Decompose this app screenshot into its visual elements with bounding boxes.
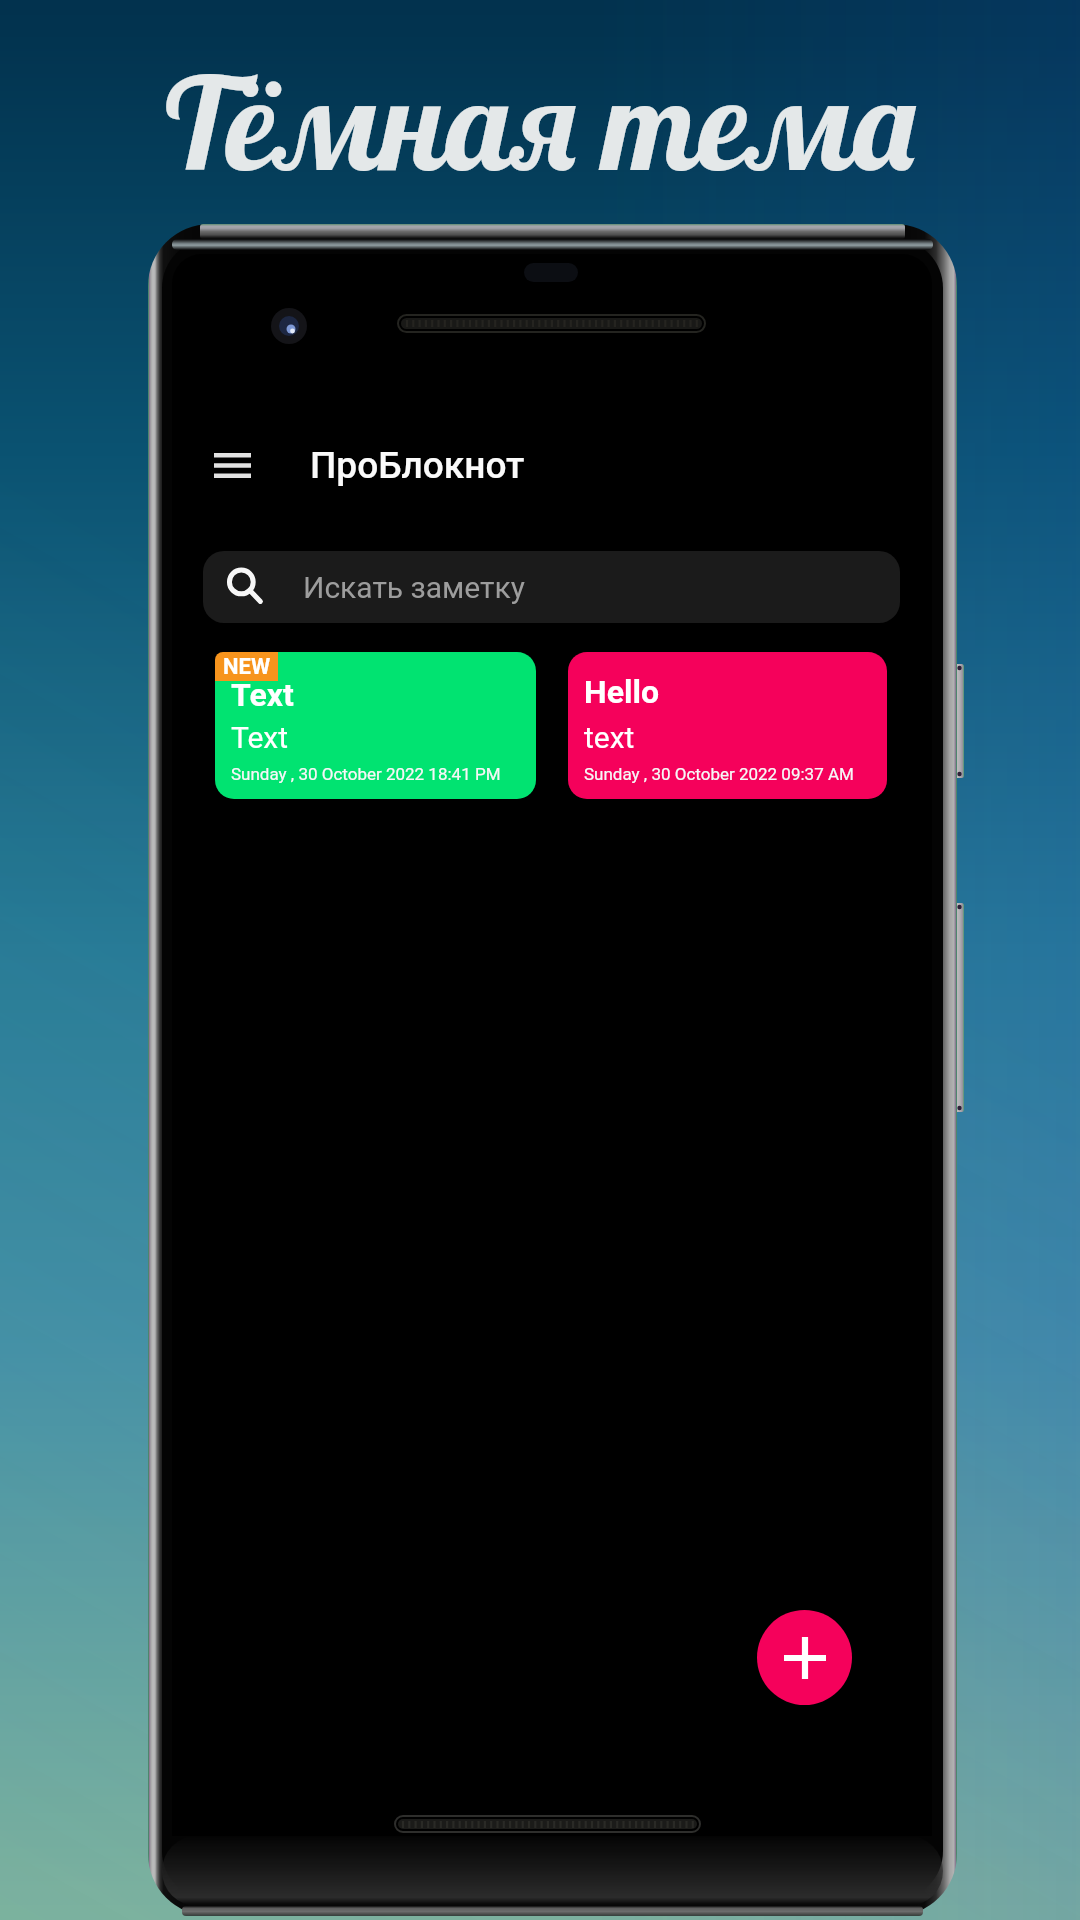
staticText: Sunday , 30 October 2022 09:37 AM	[584, 764, 854, 784]
staticText: ПроБлокнот	[310, 444, 525, 487]
button[interactable]: Open navigation menu	[202, 435, 262, 495]
staticText: Text	[231, 676, 294, 714]
staticText: Тёмная тема	[0, 42, 1080, 202]
staticText: Hello	[584, 673, 659, 711]
staticText: text	[584, 720, 635, 755]
staticText: Sunday , 30 October 2022 18:41 PM	[231, 764, 501, 784]
button[interactable]: Text	[215, 652, 536, 799]
staticText: Искать заметку	[303, 570, 525, 605]
button[interactable]: Add note	[757, 1610, 852, 1705]
staticText: NEW	[223, 654, 271, 680]
staticText: Text	[231, 720, 289, 755]
button[interactable]: Hello	[568, 652, 887, 799]
button[interactable]: Искать заметку	[203, 551, 900, 623]
